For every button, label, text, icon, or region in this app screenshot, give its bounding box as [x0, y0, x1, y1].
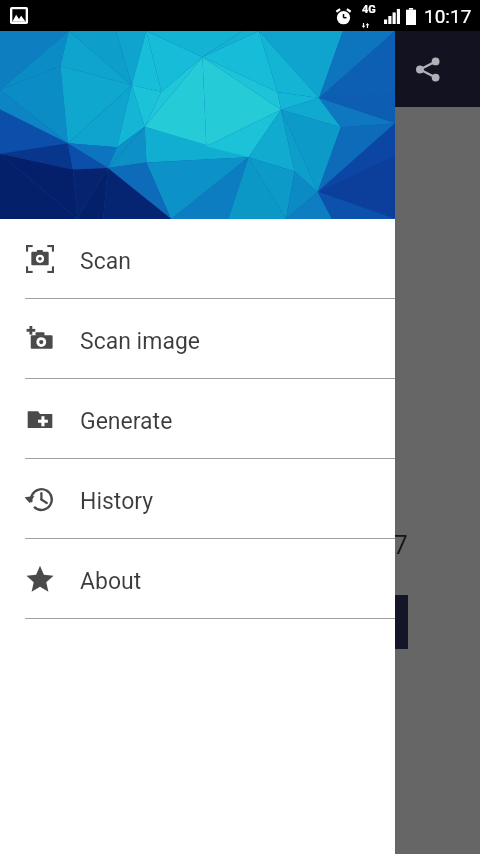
staticText: Generate	[80, 408, 173, 435]
button[interactable]: Scan	[0, 219, 395, 299]
button[interactable]: Scan image	[0, 299, 395, 379]
button[interactable]: History	[0, 459, 395, 539]
staticText: About	[80, 568, 142, 595]
staticText: 10:17	[424, 5, 472, 27]
staticText: History	[80, 488, 154, 515]
staticText: Scan image	[80, 328, 200, 355]
button[interactable]: Generate	[0, 379, 395, 459]
staticText: Scan	[80, 248, 131, 275]
button[interactable]: Share	[403, 45, 451, 93]
staticText: 137	[364, 530, 408, 560]
staticText: 4G	[362, 3, 376, 16]
button[interactable]: About	[0, 539, 395, 619]
